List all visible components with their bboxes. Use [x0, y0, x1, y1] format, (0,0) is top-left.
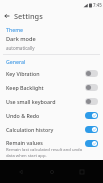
button[interactable]: Keep Backlight	[0, 80, 103, 94]
staticText: Keep Backlight	[6, 84, 85, 91]
staticText: automatically	[6, 45, 35, 51]
staticText: Settings	[14, 11, 43, 21]
staticText: Use small keyboard	[6, 98, 85, 105]
button[interactable]: Undo & Redo	[0, 108, 103, 122]
staticText: Key Vibration	[6, 70, 85, 77]
staticText: Calculation history	[6, 126, 85, 133]
button[interactable]: Enabled	[85, 112, 98, 119]
staticText: Remain last calculated result and undo d…	[6, 147, 83, 158]
button[interactable]: Enabled	[85, 126, 98, 133]
button[interactable]: Disabled	[85, 70, 98, 77]
button[interactable]: Calculation history	[0, 122, 103, 136]
button[interactable]: Key Vibration	[0, 66, 103, 80]
staticText: 7:45	[93, 2, 102, 8]
button[interactable]: Dark mode	[0, 34, 103, 51]
button[interactable]: Disabled	[85, 98, 98, 105]
button[interactable]: Remain values	[0, 136, 103, 158]
staticText: Undo & Redo	[6, 112, 85, 119]
button[interactable]: Back	[0, 9, 14, 23]
button[interactable]: Use small keyboard	[0, 94, 103, 108]
button[interactable]: Enabled	[85, 140, 98, 147]
staticText: Dark mode	[6, 35, 36, 43]
staticText: Remain values	[6, 139, 43, 146]
staticText: General	[6, 58, 26, 65]
button[interactable]: Disabled	[85, 84, 98, 91]
staticText: Theme	[6, 26, 24, 33]
